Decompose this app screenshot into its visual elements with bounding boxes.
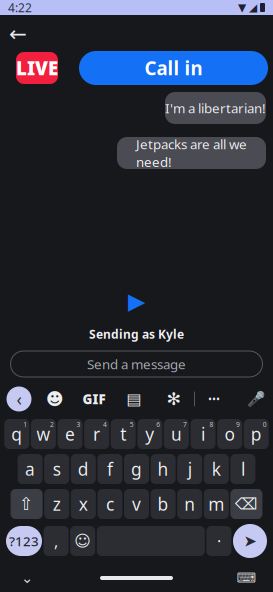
button[interactable]: n [177, 489, 202, 519]
button[interactable]: p [244, 419, 269, 449]
button[interactable]: e [57, 419, 82, 449]
staticText: l [241, 457, 245, 480]
button[interactable]: Collapse [2, 386, 36, 412]
button[interactable]: More [195, 386, 233, 412]
staticText: ••• [208, 392, 220, 406]
staticText: Jetpacks are all we need! [136, 135, 247, 171]
staticText: ⌄ [21, 570, 33, 586]
staticText: 6 [156, 420, 160, 429]
staticText: b [158, 492, 169, 515]
button[interactable]: d [71, 454, 96, 484]
button[interactable]: ?123 [6, 526, 42, 556]
button[interactable]: f [97, 454, 122, 484]
staticText: ☻ [46, 389, 64, 409]
staticText: n [184, 492, 195, 515]
staticText: j [188, 457, 192, 480]
staticText: g [131, 457, 142, 480]
button[interactable]: LIVE [16, 52, 58, 84]
staticText: , [54, 530, 58, 552]
staticText: Sending as Kyle [89, 326, 184, 342]
button[interactable]: Back [5, 23, 31, 45]
button[interactable]: GIF [74, 386, 114, 412]
button[interactable]: g [124, 454, 149, 484]
staticText: ✻ [166, 389, 181, 409]
button[interactable]: Settings [154, 386, 194, 412]
staticText: ← [9, 22, 27, 46]
staticText: k [212, 457, 221, 480]
button[interactable]: x [71, 489, 96, 519]
button[interactable]: ⌫ [230, 489, 262, 519]
staticText: ⇧ [19, 494, 34, 514]
staticText: ⌫ [235, 495, 258, 513]
button[interactable]: s [44, 454, 69, 484]
staticText: 8 [209, 420, 213, 429]
staticText: e [65, 422, 75, 445]
staticText: Call in [144, 56, 202, 80]
button[interactable]: Stickers [36, 386, 74, 412]
staticText: 1 [23, 420, 27, 429]
button[interactable]: l [230, 454, 255, 484]
button[interactable]: , [44, 526, 69, 556]
staticText: ⌨ [236, 570, 255, 585]
button[interactable]: v [124, 489, 149, 519]
staticText: u [171, 422, 182, 445]
staticText: v [132, 492, 141, 515]
button[interactable]: t [111, 419, 136, 449]
button[interactable]: q [4, 419, 29, 449]
button[interactable]: u [164, 419, 189, 449]
staticText: Send a message [87, 355, 186, 373]
staticText: z [53, 492, 61, 515]
staticText: c [106, 492, 114, 515]
staticText: ☺ [74, 532, 91, 550]
button[interactable]: Clipboard [114, 386, 154, 412]
staticText: a [25, 457, 35, 480]
button[interactable]: j [177, 454, 202, 484]
staticText: 9 [236, 420, 240, 429]
button[interactable]: Call in [79, 51, 268, 85]
staticText: · [217, 530, 221, 552]
staticText: GIF [82, 390, 105, 408]
staticText: ▤ [126, 390, 141, 408]
staticText: 4 [103, 420, 107, 429]
button[interactable]: z [44, 489, 69, 519]
button[interactable]: y [137, 419, 162, 449]
staticText: w [36, 422, 50, 445]
staticText: 0 [263, 420, 267, 429]
button[interactable]: h [151, 454, 176, 484]
button[interactable]: i [190, 419, 215, 449]
staticText: x [79, 492, 88, 515]
staticText: t [120, 422, 126, 445]
staticText: ?123 [9, 532, 39, 550]
button[interactable]: b [151, 489, 176, 519]
button[interactable]: m [204, 489, 229, 519]
staticText: s [53, 457, 61, 480]
button[interactable]: Send a message [10, 351, 262, 377]
button[interactable]: Switch keyboard [226, 568, 266, 588]
button[interactable]: r [84, 419, 109, 449]
button[interactable]: ⇧ [11, 489, 43, 519]
staticText: 🎤 [247, 391, 265, 407]
staticText: y [145, 422, 154, 445]
staticText: 5 [130, 420, 134, 429]
staticText: I'm a libertarian! [165, 99, 266, 117]
staticText: m [208, 492, 224, 515]
button[interactable]: Send [233, 524, 267, 558]
button[interactable]: c [97, 489, 122, 519]
button[interactable]: o [217, 419, 242, 449]
button[interactable]: w [31, 419, 56, 449]
button[interactable]: Hide keyboard [7, 568, 47, 588]
staticText: i [201, 422, 205, 445]
button[interactable]: k [204, 454, 229, 484]
button[interactable]: ☺ [70, 526, 95, 556]
staticText: ➤ [243, 532, 256, 550]
button[interactable]: Voice input [241, 386, 271, 412]
staticText: q [11, 422, 22, 445]
staticText: h [158, 457, 169, 480]
button[interactable]: a [18, 454, 43, 484]
staticText: r [93, 422, 100, 445]
staticText: p [251, 422, 262, 445]
staticText: o [225, 422, 235, 445]
button[interactable]: · [206, 526, 231, 556]
